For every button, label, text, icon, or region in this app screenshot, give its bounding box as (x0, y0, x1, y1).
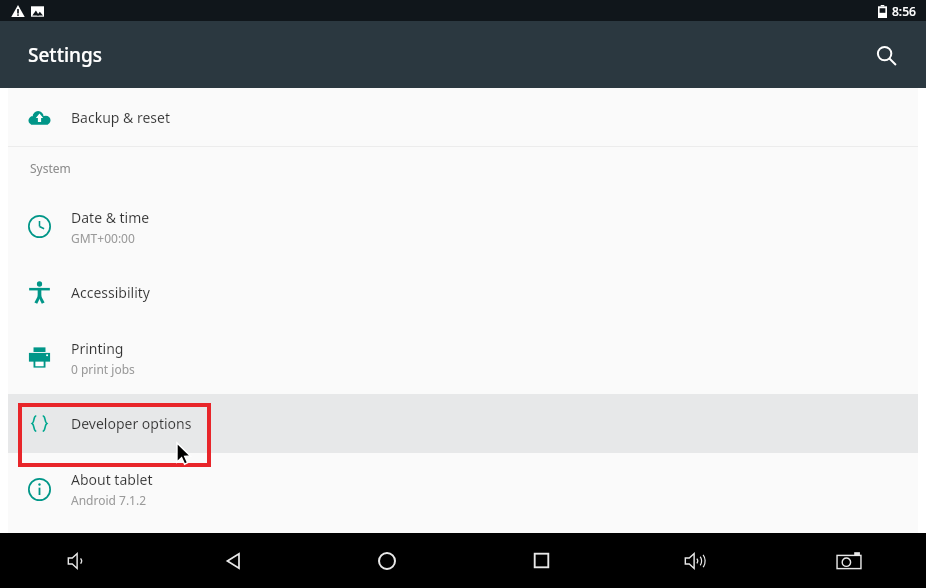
button[interactable]: Screenshot (772, 533, 926, 588)
button[interactable]: Backup & reset (8, 88, 918, 146)
button[interactable]: Home (310, 533, 464, 588)
staticText: Date & time (71, 208, 150, 227)
button[interactable]: Back (155, 533, 310, 588)
staticText: About tablet (71, 470, 153, 489)
button[interactable]: Developer options (8, 394, 918, 453)
staticText: GMT+00:00 (71, 230, 135, 246)
staticText: System (30, 160, 71, 176)
staticText: Backup & reset (71, 108, 170, 127)
button[interactable]: Date & time (8, 189, 918, 264)
staticText: Developer options (71, 414, 192, 433)
staticText: 0 print jobs (71, 361, 135, 377)
button[interactable]: Accessibility (8, 264, 918, 321)
button[interactable]: About tablet (8, 453, 918, 525)
staticText: Printing (71, 339, 124, 358)
staticText: Accessibility (71, 283, 150, 302)
button[interactable]: Volume up (618, 533, 772, 588)
staticText: 8:56 (892, 3, 916, 19)
button[interactable]: Recent apps (464, 533, 618, 588)
staticText: Settings (28, 42, 102, 68)
button[interactable]: Volume down (0, 533, 155, 588)
button[interactable]: Printing (8, 321, 918, 394)
staticText: Android 7.1.2 (71, 492, 147, 508)
button[interactable]: Search (864, 33, 908, 77)
